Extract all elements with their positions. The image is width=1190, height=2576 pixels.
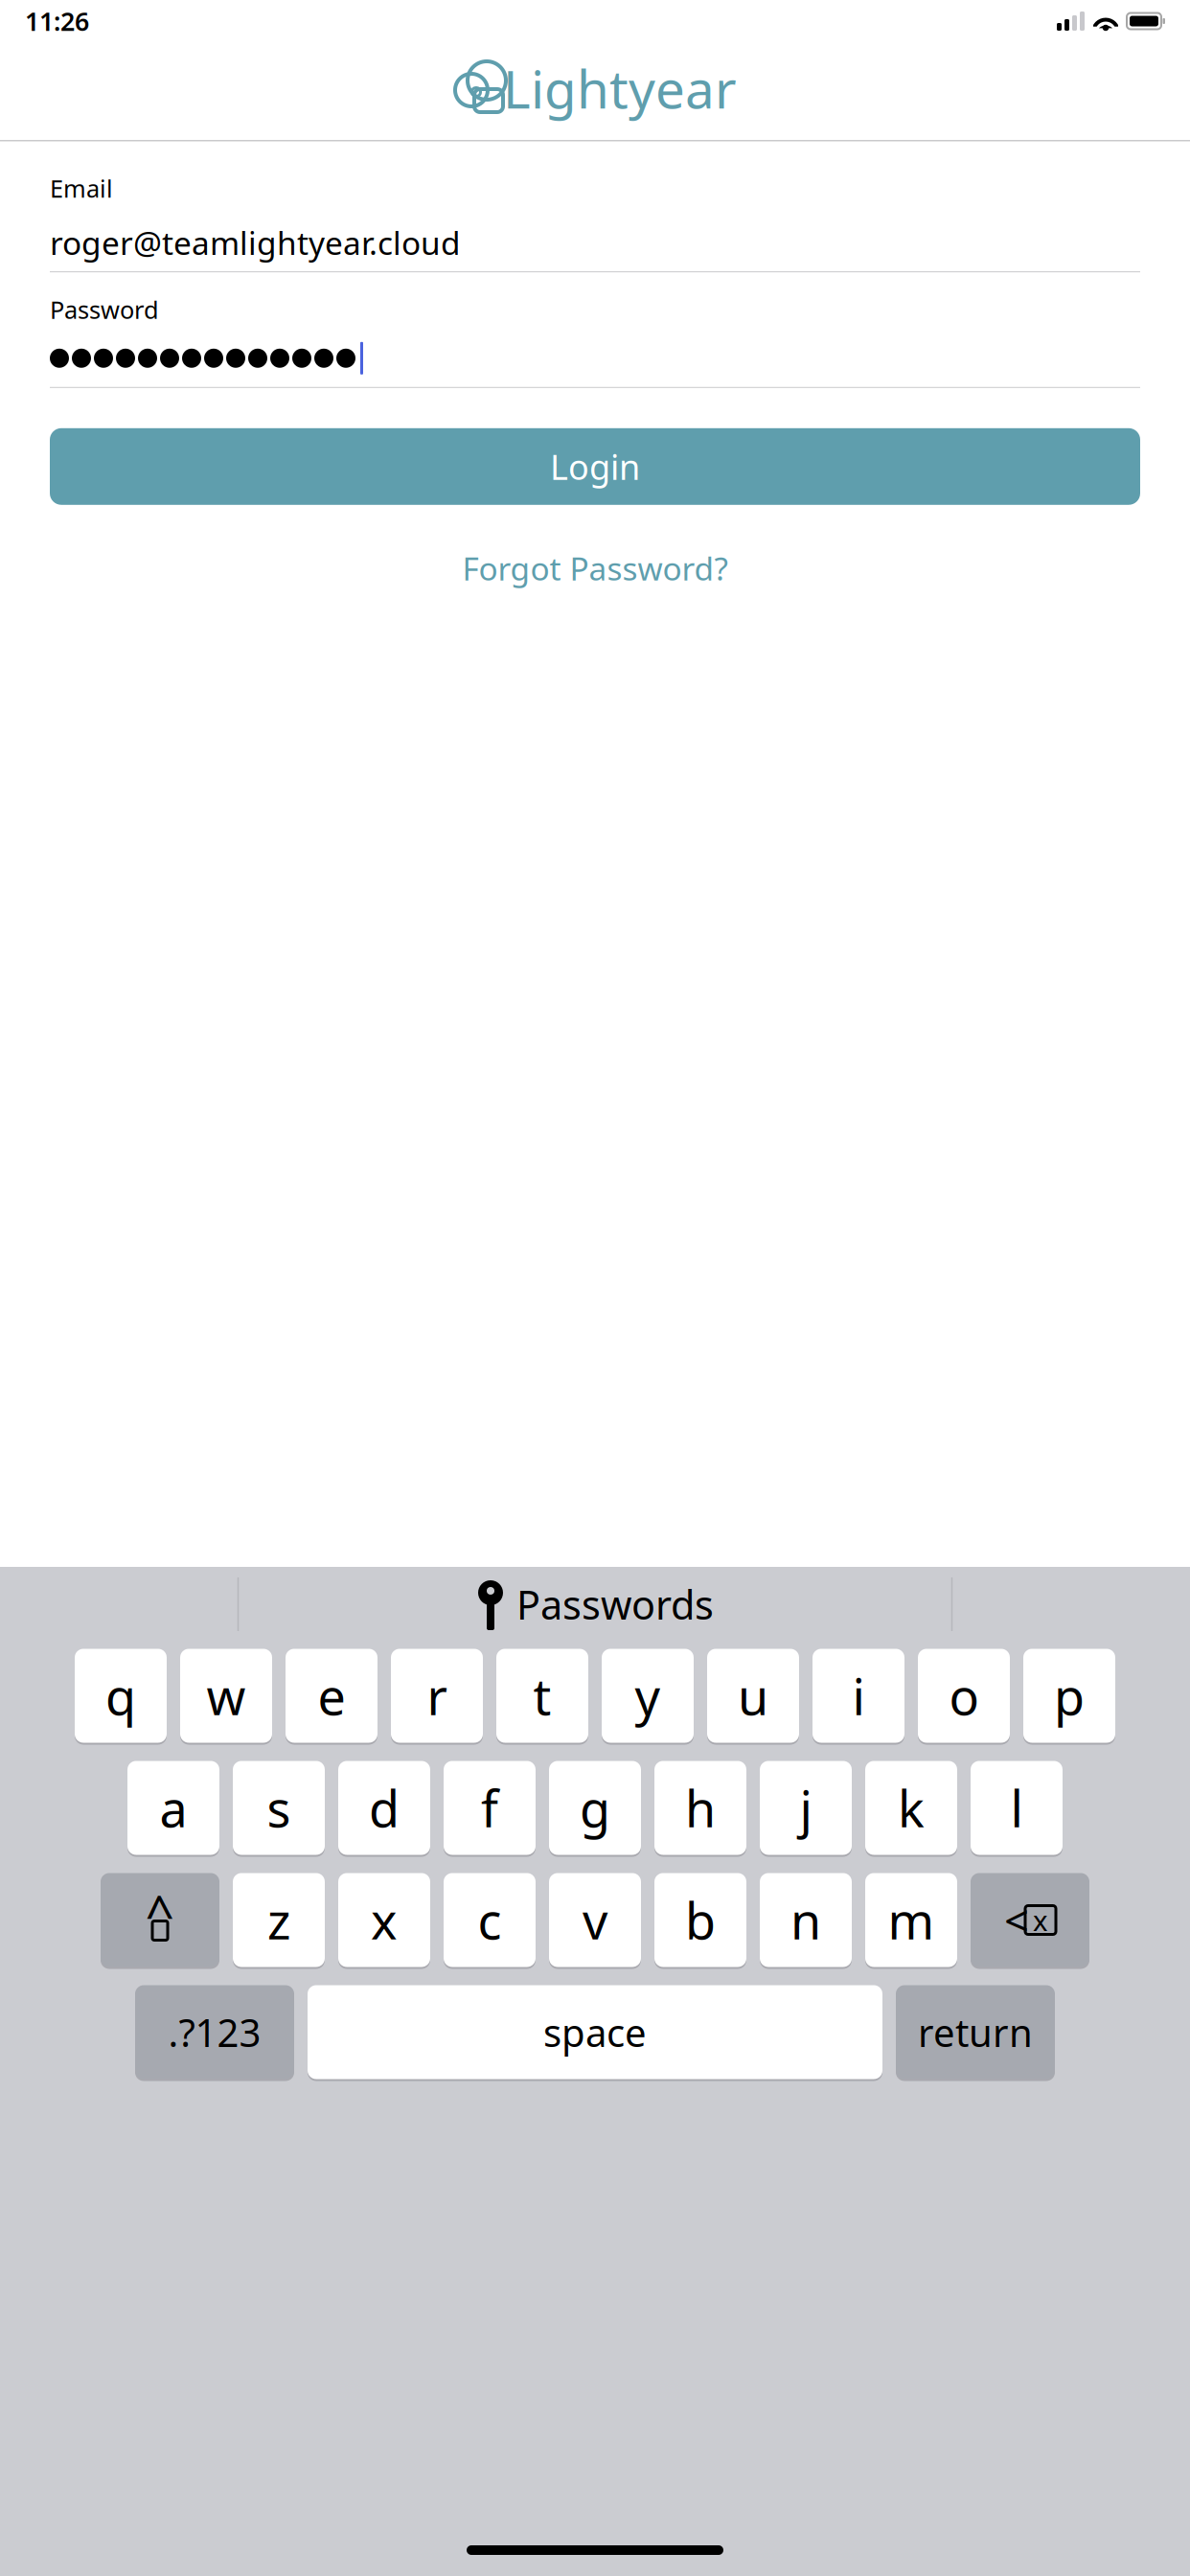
staticText: j: [800, 1775, 812, 1841]
button[interactable]: r: [391, 1647, 483, 1744]
staticText: x: [1033, 1901, 1048, 1939]
staticText: v: [583, 1887, 607, 1953]
staticText: h: [685, 1775, 716, 1841]
button[interactable]: h: [654, 1759, 746, 1856]
staticText: n: [790, 1887, 821, 1953]
staticText: u: [738, 1663, 768, 1729]
staticText: Email: [50, 172, 113, 204]
button[interactable]: n: [760, 1872, 852, 1968]
button[interactable]: b: [654, 1872, 746, 1968]
staticText: <: [1004, 1891, 1029, 1949]
staticText: k: [898, 1775, 925, 1841]
button[interactable]: k: [865, 1759, 957, 1856]
staticText: Password: [50, 293, 159, 326]
button[interactable]: i: [812, 1647, 904, 1744]
button[interactable]: g: [549, 1759, 641, 1856]
button[interactable]: u: [707, 1647, 799, 1744]
staticText: a: [160, 1775, 187, 1841]
staticText: return: [918, 2007, 1033, 2058]
staticText: r: [427, 1663, 447, 1729]
staticText: 11:26: [25, 4, 89, 38]
staticText: Forgot Password?: [462, 547, 728, 589]
button[interactable]: q: [75, 1647, 167, 1744]
button[interactable]: o: [918, 1647, 1010, 1744]
button[interactable]: space: [308, 1984, 882, 2081]
button[interactable]: Shift: [101, 1872, 219, 1968]
button[interactable]: s: [233, 1759, 325, 1856]
staticText: i: [852, 1663, 865, 1729]
staticText: q: [105, 1663, 136, 1729]
button[interactable]: d: [338, 1759, 430, 1856]
button[interactable]: j: [760, 1759, 852, 1856]
button[interactable]: m: [865, 1872, 957, 1968]
staticText: Login: [550, 444, 640, 489]
staticText: d: [369, 1775, 400, 1841]
button[interactable]: return: [896, 1984, 1055, 2081]
button[interactable]: Forgot Password?: [50, 539, 1140, 597]
button[interactable]: Login: [50, 428, 1140, 505]
staticText: y: [635, 1663, 661, 1729]
staticText: b: [685, 1887, 716, 1953]
button[interactable]: x: [338, 1872, 430, 1968]
staticText: .?123: [168, 2007, 261, 2058]
button[interactable]: c: [444, 1872, 536, 1968]
button[interactable]: w: [180, 1647, 272, 1744]
button[interactable]: e: [286, 1647, 378, 1744]
staticText: Lightyear: [503, 53, 737, 123]
staticText: x: [371, 1887, 398, 1953]
button[interactable]: Passwords: [476, 1575, 714, 1633]
button[interactable]: y: [602, 1647, 694, 1744]
staticText: Passwords: [516, 1578, 714, 1631]
staticText: roger@teamlightyear.cloud: [50, 221, 461, 264]
button[interactable]: t: [496, 1647, 588, 1744]
staticText: w: [206, 1663, 246, 1729]
button[interactable]: z: [233, 1872, 325, 1968]
staticText: ^: [145, 1878, 175, 1946]
button[interactable]: v: [549, 1872, 641, 1968]
staticText: f: [481, 1775, 498, 1841]
staticText: s: [267, 1775, 291, 1841]
staticText: z: [267, 1887, 290, 1953]
button[interactable]: a: [127, 1759, 219, 1856]
button[interactable]: .?123: [135, 1984, 294, 2081]
staticText: m: [888, 1887, 935, 1953]
staticText: space: [543, 2007, 647, 2058]
staticText: p: [1054, 1663, 1085, 1729]
button[interactable]: Delete: [971, 1872, 1089, 1968]
button[interactable]: l: [971, 1759, 1063, 1856]
staticText: g: [580, 1775, 610, 1841]
button[interactable]: f: [444, 1759, 536, 1856]
staticText: o: [949, 1663, 979, 1729]
staticText: c: [478, 1887, 502, 1953]
staticText: t: [533, 1663, 551, 1729]
button[interactable]: p: [1023, 1647, 1115, 1744]
staticText: e: [318, 1663, 345, 1729]
staticText: l: [1010, 1775, 1023, 1841]
